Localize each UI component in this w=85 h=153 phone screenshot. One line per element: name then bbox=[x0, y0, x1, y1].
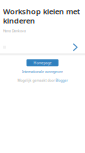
staticText: Internationale weergeven bbox=[22, 69, 63, 74]
staticText: Hana Dankova bbox=[3, 29, 26, 33]
button[interactable]: Blogger bbox=[55, 78, 67, 83]
button[interactable]: Share bbox=[1, 44, 8, 51]
staticText: kinderen bbox=[3, 15, 35, 26]
button[interactable]: Homepage bbox=[26, 59, 58, 66]
staticText: Workshop kleien met bbox=[3, 6, 80, 16]
staticText: Homepage bbox=[33, 60, 51, 65]
button[interactable]: Newer post bbox=[71, 41, 80, 53]
button[interactable]: Internationale weergeven bbox=[22, 69, 63, 74]
staticText: Mogelijk gemaakt door bbox=[17, 78, 54, 83]
staticText: Blogger bbox=[55, 78, 67, 83]
